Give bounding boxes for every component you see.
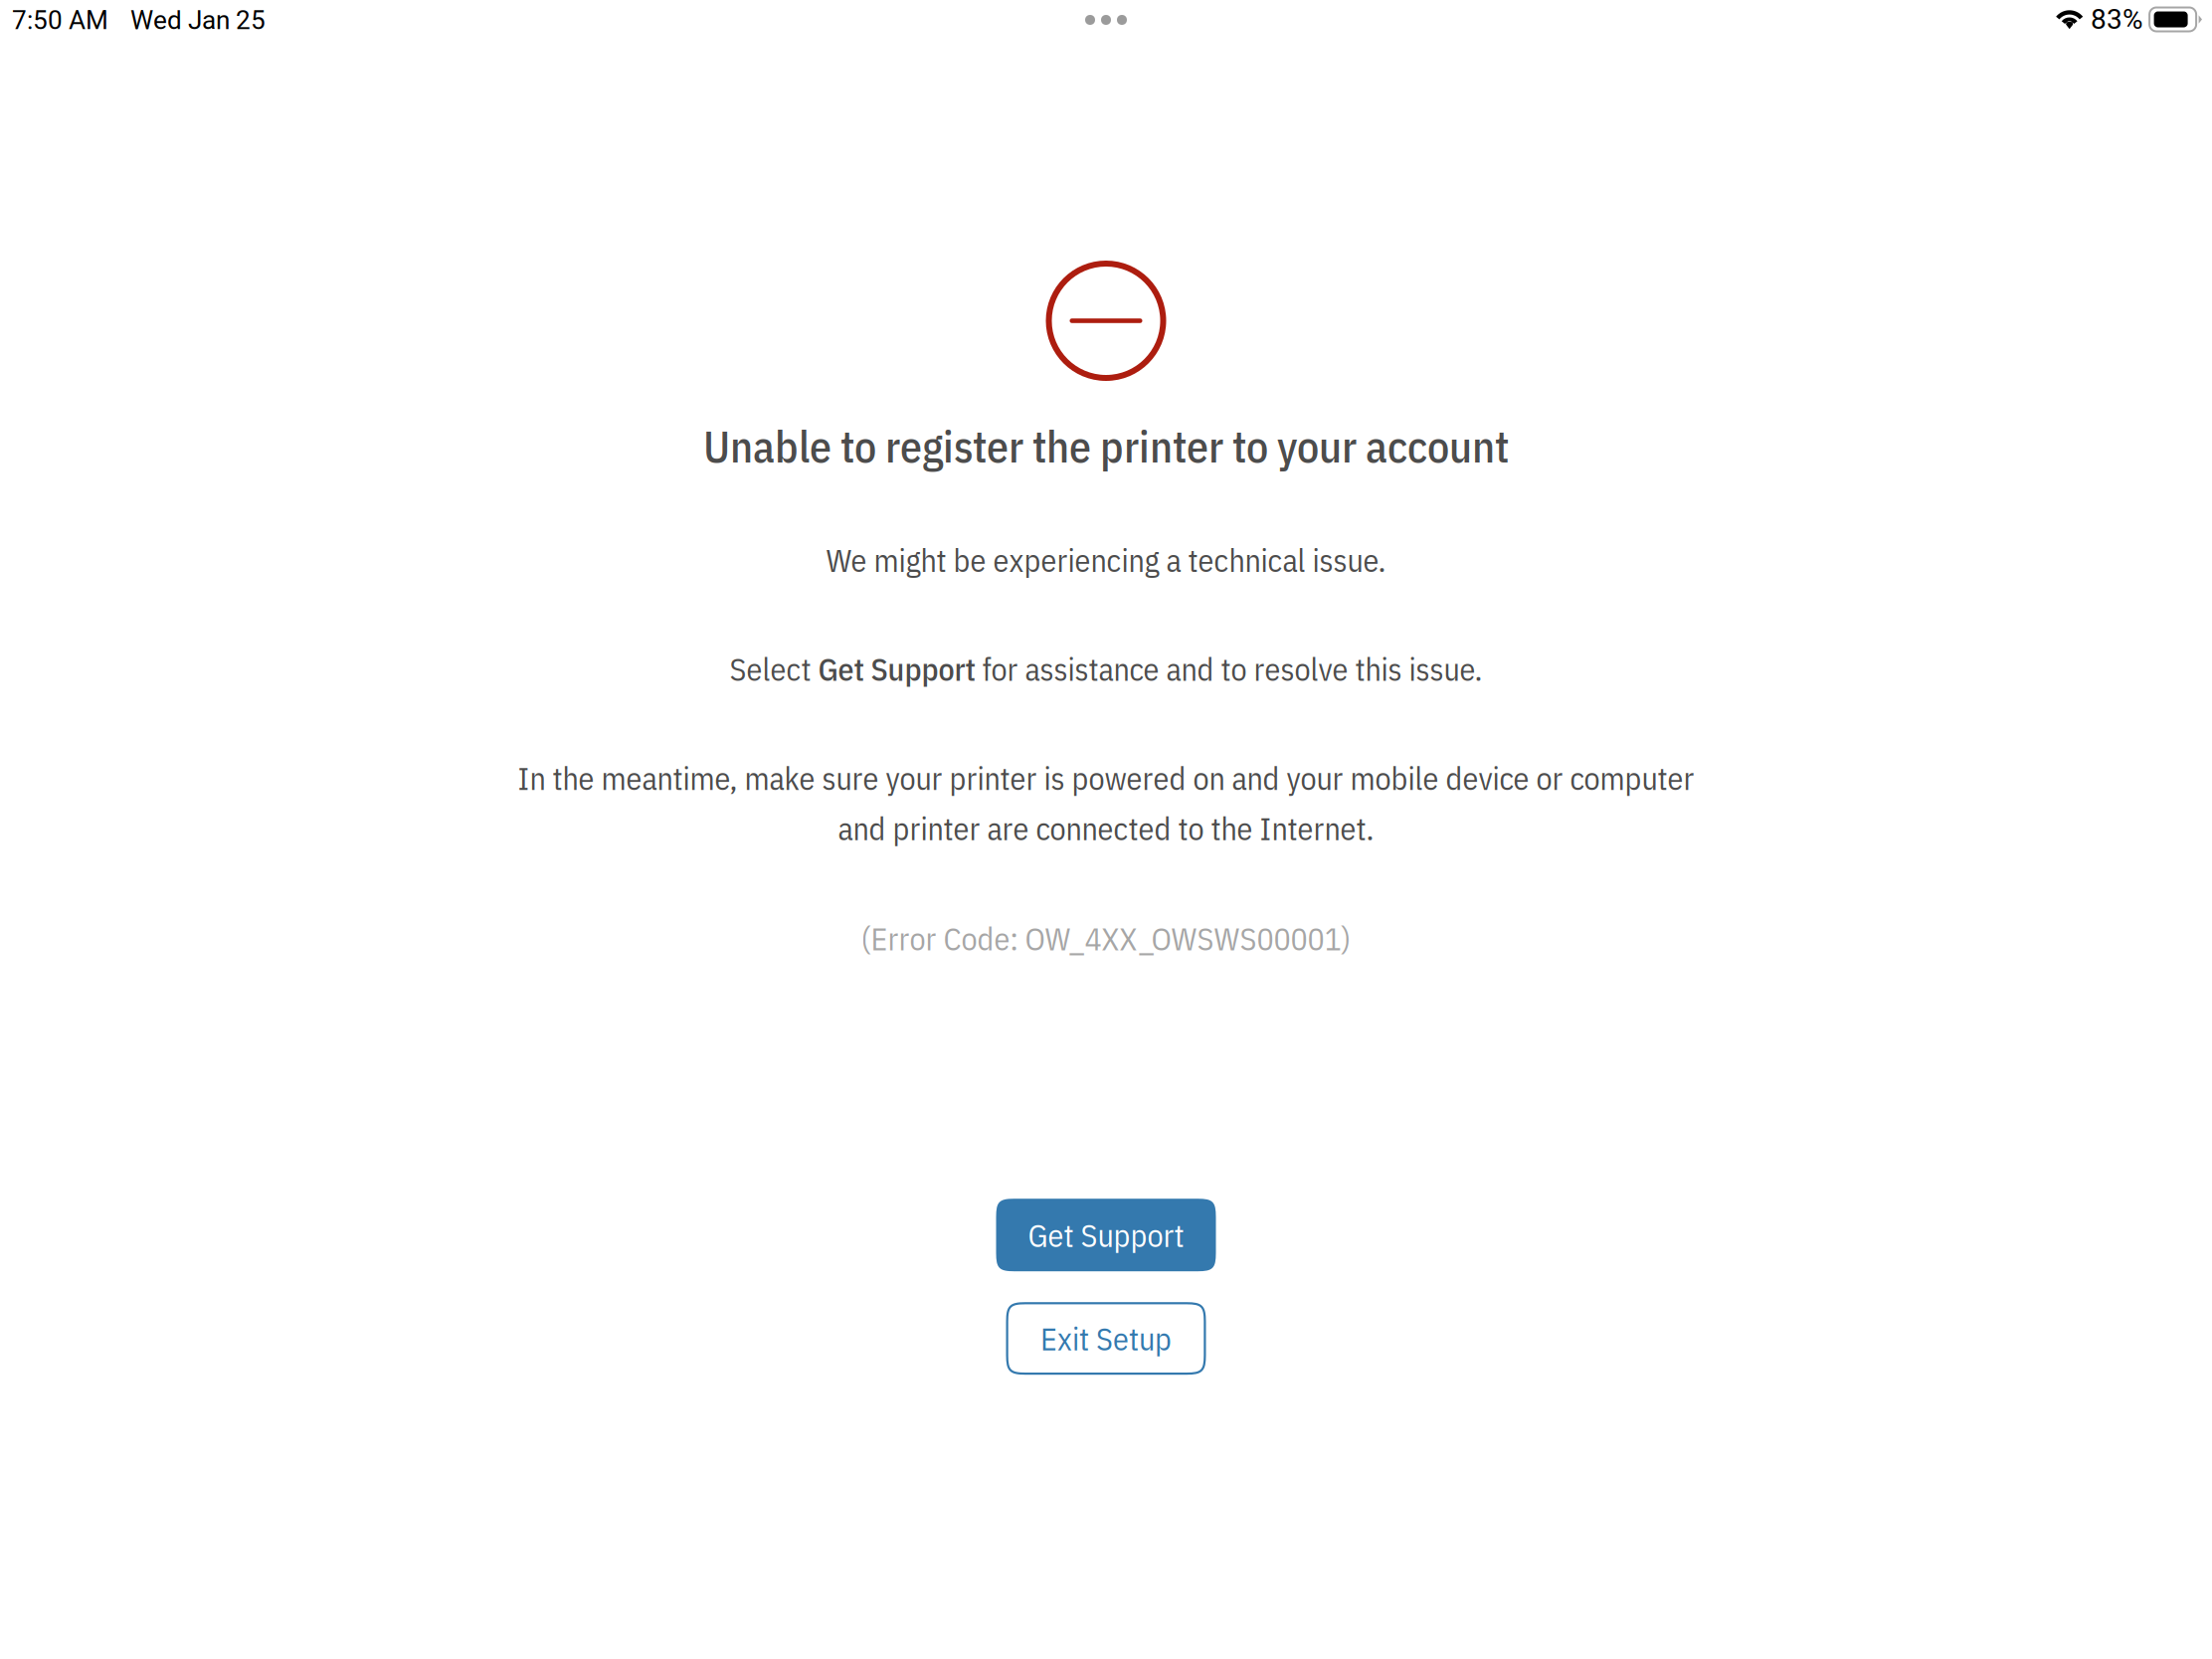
staticText: Exit Setup <box>1040 1318 1172 1359</box>
staticText: We might be experiencing a technical iss… <box>826 539 1386 581</box>
staticText: Get Support <box>1028 1214 1184 1256</box>
staticText: In the meantime, make sure your printer … <box>518 757 1694 799</box>
staticText: (Error Code: OW_4XX_OWSWS00001) <box>861 918 1351 959</box>
staticText: Select <box>730 648 818 690</box>
staticText: Wed Jan 25 <box>130 5 266 35</box>
staticText: for assistance and to resolve this issue… <box>975 648 1482 690</box>
staticText: Get Support <box>818 648 975 690</box>
button[interactable]: Get Support <box>996 1199 1216 1271</box>
staticText: Unable to register the printer to your a… <box>703 418 1509 475</box>
staticText: 7:50 AM <box>12 5 108 35</box>
button[interactable]: Exit Setup <box>1006 1302 1206 1375</box>
staticText: and printer are connected to the Interne… <box>838 808 1374 849</box>
staticText: 83% <box>2091 3 2143 36</box>
